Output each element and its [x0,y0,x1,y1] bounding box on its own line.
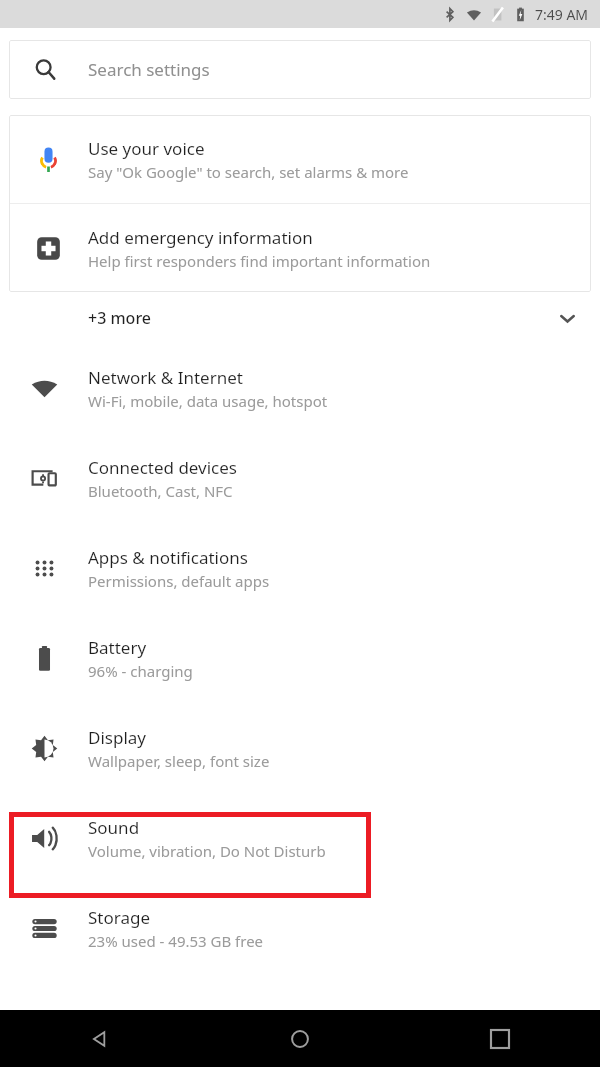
staticText: Battery [88,636,147,659]
staticText: Wallpaper, sleep, font size [88,751,270,771]
button[interactable]: Home [200,1010,400,1067]
button[interactable]: Sound [0,793,600,883]
button[interactable]: Search settings [9,40,591,99]
button[interactable]: Use your voice [9,115,591,203]
button[interactable]: Battery [0,613,600,703]
button[interactable]: Recent apps [400,1010,600,1067]
button[interactable]: Apps & notifications [0,523,600,613]
staticText: Display [88,726,146,749]
button[interactable]: Back [0,1010,200,1067]
button[interactable]: +3 more [0,292,600,343]
staticText: Storage [88,906,151,929]
staticText: 23% used - 49.53 GB free [88,931,264,951]
staticText: +3 more [88,307,152,329]
staticText: Permissions, default apps [88,571,270,591]
staticText: Sound [88,816,140,839]
staticText: Say "Ok Google" to search, set alarms & … [88,162,409,182]
staticText: Help first responders find important inf… [88,251,431,271]
staticText: Wi-Fi, mobile, data usage, hotspot [88,391,328,411]
staticText: 7:49 AM [535,5,589,24]
staticText: 96% - charging [88,661,193,681]
button[interactable]: Connected devices [0,433,600,523]
staticText: Search settings [88,58,210,81]
staticText: Use your voice [88,137,205,160]
button[interactable]: Add emergency information [9,204,591,292]
staticText: Volume, vibration, Do Not Disturb [88,841,326,861]
staticText: Network & Internet [88,366,243,389]
staticText: Add emergency information [88,226,313,249]
button[interactable]: Network & Internet [0,343,600,433]
button[interactable]: Storage [0,883,600,973]
button[interactable]: Display [0,703,600,793]
staticText: Bluetooth, Cast, NFC [88,481,233,501]
staticText: Connected devices [88,456,238,479]
staticText: Apps & notifications [88,546,248,569]
